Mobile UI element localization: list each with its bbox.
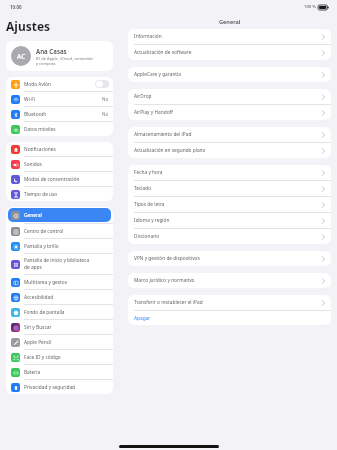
staticText: Wi-Fi <box>24 96 35 103</box>
button[interactable]: Teclado <box>128 181 331 196</box>
button[interactable]: VPN y gestión de dispositivos <box>128 251 331 266</box>
staticText: Multitarea y gestos <box>24 279 68 286</box>
staticText: Teclado <box>134 185 322 192</box>
staticText: Batería <box>24 369 41 376</box>
button[interactable]: Sonidos <box>6 157 113 171</box>
button[interactable]: Fondo de pantalla <box>6 305 113 319</box>
button[interactable]: Tiempo de uso <box>6 187 113 201</box>
staticText: 100 % <box>304 4 316 10</box>
button[interactable]: Siri y Buscar <box>6 320 113 334</box>
button[interactable]: Transferir o restablecer el iPad <box>128 295 331 310</box>
button[interactable]: Bluetooth <box>6 107 113 121</box>
staticText: No <box>102 111 109 117</box>
button[interactable]: Batería <box>6 365 113 379</box>
button[interactable]: Face ID y código <box>6 350 113 364</box>
staticText: Bluetooth <box>24 111 47 118</box>
staticText: Tiempo de uso <box>24 191 58 198</box>
button[interactable]: Pantalla de inicio y biblioteca <box>6 254 113 274</box>
button[interactable]: Centro de control <box>6 224 113 238</box>
staticText: Modos de concentración <box>24 176 80 183</box>
button[interactable]: AC <box>6 41 113 71</box>
staticText: AirDrop <box>134 93 322 100</box>
staticText: Siri y Buscar <box>24 324 52 331</box>
button[interactable]: Diccionario <box>128 229 331 244</box>
staticText: y compras <box>36 61 56 66</box>
button[interactable]: Apagar <box>128 311 331 325</box>
staticText: Notificaciones <box>24 146 56 153</box>
staticText: Diccionario <box>134 233 322 240</box>
staticText: Pantalla y brillo <box>24 243 59 250</box>
staticText: Idioma y región <box>134 217 322 224</box>
button[interactable]: AppleCare y garantía <box>128 67 331 82</box>
staticText: Información <box>134 33 322 40</box>
staticText: ID de Apple, iCloud, contenido <box>36 56 93 61</box>
staticText: Ana Casas <box>36 47 67 55</box>
button[interactable]: AirPlay y Handoff <box>128 105 331 120</box>
staticText: Apple Pencil <box>24 339 52 346</box>
staticText: Marco jurídico y normativo <box>134 277 322 284</box>
staticText: Sonidos <box>24 161 42 168</box>
button[interactable]: Accesibilidad <box>6 290 113 304</box>
button[interactable]: General <box>8 208 111 222</box>
button[interactable]: Fecha y hora <box>128 165 331 180</box>
staticText: 10:00 <box>10 4 22 10</box>
staticText: Fecha y hora <box>134 169 322 176</box>
button[interactable]: Multitarea y gestos <box>6 275 113 289</box>
staticText: Tipos de letra <box>134 201 322 208</box>
staticText: Fondo de pantalla <box>24 309 65 316</box>
staticText: Centro de control <box>24 228 64 235</box>
button[interactable]: Datos móviles <box>6 122 113 136</box>
button[interactable]: Actualización de software <box>128 45 331 60</box>
button[interactable]: Almacenamiento del iPad <box>128 127 331 142</box>
button[interactable]: AirDrop <box>128 89 331 104</box>
button[interactable]: Privacidad y seguridad <box>6 380 113 394</box>
staticText: AppleCare y garantía <box>134 71 322 78</box>
staticText: No <box>102 96 109 102</box>
staticText: Apagar <box>134 315 151 322</box>
staticText: Ajustes <box>6 18 51 34</box>
staticText: Modo Avión <box>24 81 51 88</box>
button[interactable]: Información <box>128 29 331 44</box>
button[interactable]: Wi-Fi <box>6 92 113 106</box>
button[interactable]: Actualización en segundo plano <box>128 143 331 158</box>
staticText: Accesibilidad <box>24 294 54 301</box>
button[interactable]: Idioma y región <box>128 213 331 228</box>
button[interactable]: Apple Pencil <box>6 335 113 349</box>
staticText: Almacenamiento del iPad <box>134 131 322 138</box>
staticText: AirPlay y Handoff <box>134 109 322 116</box>
staticText: AC <box>17 52 26 61</box>
staticText: Transferir o restablecer el iPad <box>134 299 322 306</box>
button[interactable]: Tipos de letra <box>128 197 331 212</box>
staticText: Face ID y código <box>24 354 61 361</box>
staticText: General <box>24 212 42 219</box>
staticText: Privacidad y seguridad <box>24 384 76 391</box>
staticText: Pantalla de inicio y biblioteca <box>24 257 90 264</box>
staticText: General <box>219 18 241 26</box>
button[interactable]: Marco jurídico y normativo <box>128 273 331 288</box>
staticText: de apps <box>24 264 42 271</box>
staticText: VPN y gestión de dispositivos <box>134 255 322 262</box>
staticText: Actualización en segundo plano <box>134 147 322 154</box>
button[interactable]: Notificaciones <box>6 142 113 156</box>
button[interactable]: Modos de concentración <box>6 172 113 186</box>
button[interactable]: Modo Avión <box>6 77 113 91</box>
staticText: Actualización de software <box>134 49 322 56</box>
button[interactable]: Pantalla y brillo <box>6 239 113 253</box>
staticText: Datos móviles <box>24 126 56 133</box>
